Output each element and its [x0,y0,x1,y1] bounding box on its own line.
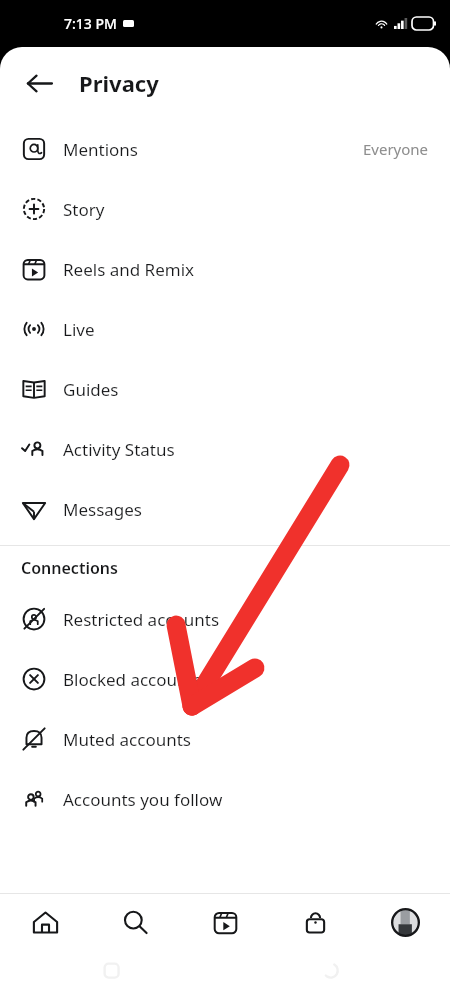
button[interactable]: Search [90,894,180,951]
button[interactable]: Activity Status [0,419,450,479]
button[interactable]: Accounts you follow [0,769,450,829]
staticText: Muted accounts [63,728,191,751]
button[interactable]: Shop [270,894,360,951]
staticText: Blocked accounts [63,668,202,691]
staticText: Activity Status [63,438,175,461]
staticText: Mentions [63,138,138,161]
staticText: Reels and Remix [63,258,195,281]
button[interactable]: Mentions [0,119,450,179]
button[interactable]: Messages [0,479,450,539]
staticText: Connections [21,557,118,579]
button[interactable]: Live [0,299,450,359]
button[interactable]: Story [0,179,450,239]
staticText: Everyone [363,139,429,159]
staticText: Accounts you follow [63,788,223,811]
button[interactable]: Muted accounts [0,709,450,769]
staticText: Live [63,318,95,341]
staticText: Story [63,198,105,221]
staticText: Restricted accounts [63,608,220,631]
button[interactable]: Home [0,894,90,951]
staticText: Guides [63,378,119,401]
button[interactable]: Back [20,64,58,102]
button[interactable]: Reels [180,894,270,951]
button[interactable]: Blocked accounts [0,649,450,709]
button[interactable]: Reels and Remix [0,239,450,299]
staticText: Messages [63,498,143,521]
button[interactable]: Profile [360,894,450,951]
button[interactable]: Restricted accounts [0,589,450,649]
staticText: Privacy [79,68,159,98]
button[interactable]: Guides [0,359,450,419]
staticText: 7:13 PM [64,14,117,33]
